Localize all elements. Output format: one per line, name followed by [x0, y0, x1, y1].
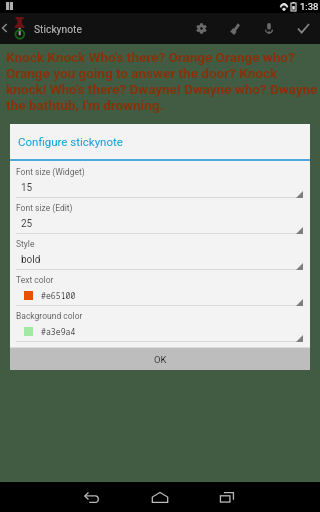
staticText: Background color	[16, 311, 83, 321]
staticText: Style	[16, 239, 35, 249]
staticText: 25	[21, 218, 33, 230]
staticText: OK	[154, 354, 167, 365]
staticText: 15	[21, 182, 33, 194]
button[interactable]: Text color	[10, 270, 310, 306]
button[interactable]: Font size (Edit)	[10, 198, 310, 234]
button[interactable]: Font size (Widget)	[10, 162, 310, 198]
button[interactable]: Home	[130, 482, 190, 512]
button[interactable]: Background color	[10, 306, 310, 342]
button[interactable]: Style	[10, 234, 310, 270]
button[interactable]: Back	[62, 482, 122, 512]
staticText: bold	[21, 254, 41, 266]
staticText: Font size (Widget)	[16, 167, 85, 177]
button[interactable]: Navigate up	[0, 13, 32, 44]
button[interactable]: Brush	[218, 13, 252, 44]
staticText: Text color	[16, 275, 54, 285]
staticText: Stickynote	[34, 23, 82, 35]
staticText: 1:38	[300, 1, 319, 12]
button[interactable]: Done	[286, 13, 320, 44]
staticText: Font size (Edit)	[16, 203, 73, 213]
button[interactable]: Voice input	[252, 13, 286, 44]
button[interactable]: Recent apps	[197, 482, 257, 512]
button[interactable]: Settings	[184, 13, 218, 44]
staticText: Knock Knock Who's there? Orange Orange w…	[6, 49, 320, 113]
staticText: #a3e9a4	[41, 326, 76, 337]
button[interactable]: OK	[10, 348, 310, 370]
staticText: Configure stickynote	[18, 135, 123, 148]
staticText: #e65100	[41, 290, 76, 301]
